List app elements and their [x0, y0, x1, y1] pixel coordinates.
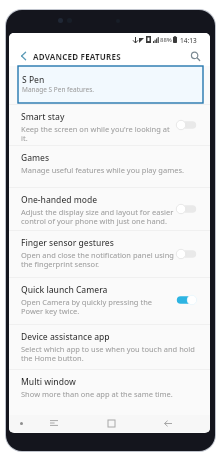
- staticText: 88%: [160, 36, 172, 44]
- button[interactable]: Finger sensor gestures: [9, 230, 210, 277]
- button[interactable]: Recents: [47, 416, 61, 430]
- staticText: Manage useful features while you play ga…: [21, 165, 185, 175]
- staticText: One-handed mode: [21, 194, 98, 206]
- staticText: Select which app to use when you touch a…: [21, 344, 197, 364]
- staticText: S Pen: [22, 74, 45, 86]
- button[interactable]: Toggle: [176, 249, 197, 259]
- button[interactable]: Games: [9, 145, 210, 187]
- staticText: ADVANCED FEATURES: [33, 51, 121, 62]
- staticText: Games: [21, 152, 50, 164]
- staticText: Device assistance app: [21, 331, 110, 343]
- button[interactable]: S Pen: [18, 66, 203, 103]
- button[interactable]: Home: [104, 416, 118, 430]
- staticText: 14:13: [180, 36, 197, 45]
- button[interactable]: Back: [14, 47, 32, 65]
- staticText: Smart stay: [21, 111, 65, 123]
- staticText: Open Camera by quickly pressing the Powe…: [21, 297, 174, 317]
- staticText: Keep the screen on while you're looking …: [21, 124, 174, 144]
- staticText: Adjust the display size and layout for e…: [21, 207, 174, 227]
- staticText: Manage S Pen features.: [22, 85, 95, 94]
- button[interactable]: Smart stay: [9, 104, 210, 145]
- button[interactable]: One-handed mode: [9, 187, 210, 230]
- button[interactable]: Toggle: [176, 295, 197, 305]
- button[interactable]: Search: [186, 47, 204, 65]
- button[interactable]: Toggle: [176, 204, 197, 214]
- staticText: Open and close the notification panel us…: [21, 250, 174, 270]
- staticText: Multi window: [21, 376, 76, 388]
- staticText: Quick launch Camera: [21, 284, 108, 296]
- staticText: Show more than one app at the same time.: [21, 389, 173, 399]
- button[interactable]: Back: [161, 416, 175, 430]
- button[interactable]: Device assistance app: [9, 324, 210, 369]
- button[interactable]: Multi window: [9, 369, 210, 402]
- staticText: Finger sensor gestures: [21, 237, 114, 249]
- button[interactable]: Toggle: [176, 120, 197, 130]
- button[interactable]: Quick launch Camera: [9, 277, 210, 323]
